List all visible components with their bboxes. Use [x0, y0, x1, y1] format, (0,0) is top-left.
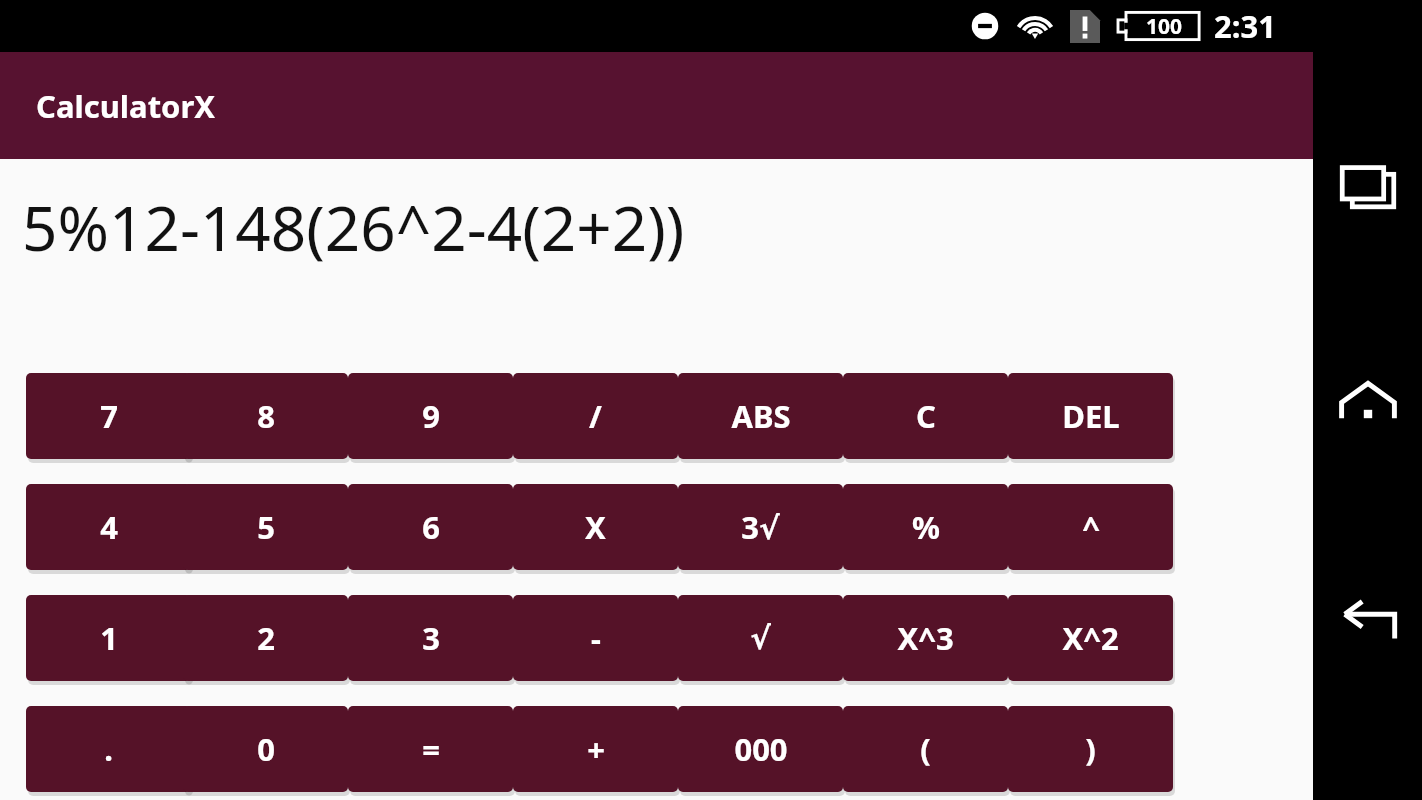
staticText: 8: [257, 395, 275, 437]
button[interactable]: (: [843, 706, 1008, 792]
staticText: 1: [100, 617, 118, 659]
staticText: 5: [257, 506, 275, 548]
button[interactable]: =: [348, 706, 513, 792]
staticText: 9: [422, 395, 440, 437]
staticText: 5%12-148(26^2-4(2+2)): [22, 185, 685, 269]
staticText: 3√: [741, 506, 780, 548]
staticText: 100: [1146, 12, 1183, 41]
staticText: √: [750, 620, 771, 656]
staticText: /: [589, 395, 602, 437]
button[interactable]: 5: [183, 484, 348, 570]
button[interactable]: Back: [1318, 570, 1418, 670]
button[interactable]: CalculatorX: [0, 52, 1313, 159]
staticText: 2: [257, 617, 275, 659]
staticText: 000: [734, 728, 788, 770]
staticText: .: [104, 728, 113, 770]
staticText: 6: [422, 506, 440, 548]
staticText: C: [916, 395, 936, 437]
button[interactable]: /: [513, 373, 678, 459]
staticText: (: [920, 728, 931, 770]
staticText: =: [422, 728, 440, 770]
button[interactable]: √: [678, 595, 843, 681]
button[interactable]: 000: [678, 706, 843, 792]
button[interactable]: ): [1008, 706, 1173, 792]
button[interactable]: X^3: [843, 595, 1008, 681]
button[interactable]: C: [843, 373, 1008, 459]
staticText: %: [912, 506, 940, 548]
button[interactable]: 1: [26, 595, 191, 681]
button[interactable]: Recent apps: [1318, 140, 1418, 240]
staticText: ABS: [731, 395, 791, 437]
button[interactable]: 7: [26, 373, 191, 459]
button[interactable]: 3√: [678, 484, 843, 570]
staticText: DEL: [1062, 395, 1120, 437]
staticText: CalculatorX: [36, 85, 216, 127]
button[interactable]: X^2: [1008, 595, 1173, 681]
button[interactable]: 2: [183, 595, 348, 681]
button[interactable]: -: [513, 595, 678, 681]
staticText: ^: [1082, 506, 1100, 548]
staticText: X^3: [897, 617, 954, 659]
button[interactable]: 3: [348, 595, 513, 681]
staticText: X: [585, 506, 606, 548]
button[interactable]: DEL: [1008, 373, 1173, 459]
staticText: 4: [100, 506, 118, 548]
button[interactable]: 4: [26, 484, 191, 570]
staticText: 7: [100, 395, 118, 437]
staticText: ): [1085, 728, 1096, 770]
button[interactable]: 9: [348, 373, 513, 459]
staticText: 2:31: [1214, 5, 1276, 47]
button[interactable]: +: [513, 706, 678, 792]
button[interactable]: ABS: [678, 373, 843, 459]
staticText: -: [591, 617, 601, 659]
button[interactable]: 0: [183, 706, 348, 792]
button[interactable]: 6: [348, 484, 513, 570]
button[interactable]: 8: [183, 373, 348, 459]
button[interactable]: %: [843, 484, 1008, 570]
staticText: 3: [422, 617, 440, 659]
button[interactable]: .: [26, 706, 191, 792]
button[interactable]: X: [513, 484, 678, 570]
button[interactable]: ^: [1008, 484, 1173, 570]
staticText: +: [587, 728, 605, 770]
staticText: 0: [257, 728, 275, 770]
button[interactable]: Home: [1318, 355, 1418, 455]
staticText: X^2: [1062, 617, 1119, 659]
